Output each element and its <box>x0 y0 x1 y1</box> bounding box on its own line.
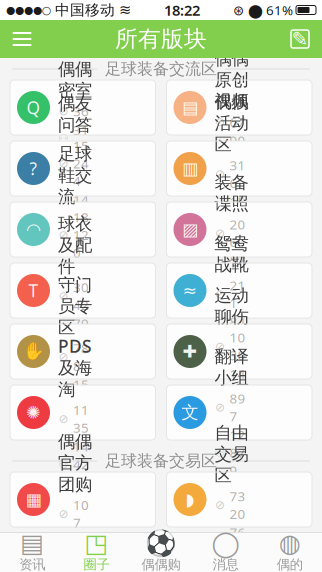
staticText: 翻译小组 <box>214 346 248 388</box>
button[interactable]: ✋ <box>10 324 155 379</box>
staticText: 18120 <box>73 208 89 261</box>
staticText: 5752 <box>229 252 245 287</box>
staticText: 偶偶密室 <box>58 59 92 101</box>
staticText: ⊘ <box>58 507 68 520</box>
staticText: ⊘ <box>58 104 68 118</box>
staticText: 文 <box>181 402 198 423</box>
staticText: 运动聊伤 <box>214 285 248 327</box>
staticText: 316 <box>229 156 245 192</box>
button[interactable]: ▥ <box>166 141 312 196</box>
staticText: ≋ <box>119 2 131 18</box>
staticText: ⚇ <box>58 210 69 224</box>
staticText: 偶偶购 <box>141 556 180 572</box>
button[interactable]: Q <box>10 80 155 135</box>
staticText: 15527 <box>229 193 245 246</box>
staticText: 足球装备交易区 <box>105 451 217 471</box>
staticText: ▤ <box>182 98 198 117</box>
staticText: ⚇ <box>214 263 225 276</box>
staticText: 偶的 <box>277 556 303 572</box>
staticText: 1030 <box>229 328 245 364</box>
staticText: ⚇ <box>58 334 69 348</box>
button[interactable]: ? <box>10 141 155 196</box>
staticText: 36 <box>73 102 89 120</box>
staticText: ⚇ <box>214 385 225 398</box>
staticText: ⚇ <box>58 395 69 409</box>
staticText: ⚇ <box>58 457 69 471</box>
staticText: ⊘ <box>58 350 68 364</box>
staticText: 1135 <box>73 401 89 436</box>
button[interactable]: 发帖 <box>278 20 322 58</box>
staticText: 偶偶官方团购 <box>58 431 92 495</box>
staticText: 211 <box>229 276 245 312</box>
button[interactable]: ◳ <box>64 532 129 572</box>
staticText: 12879 <box>229 426 245 479</box>
staticText: ⊛ ⬤ 61% <box>233 1 296 19</box>
button[interactable]: ✺ <box>10 385 155 440</box>
staticText: 球衣及配件 <box>58 213 92 277</box>
staticText: ✚ <box>182 342 197 361</box>
staticText: ✋ <box>22 342 44 361</box>
staticText: ⊘ <box>215 167 225 181</box>
staticText: PDS及海淘 <box>58 334 92 400</box>
staticText: Q <box>26 96 40 119</box>
staticText: ⚇ <box>214 324 225 337</box>
staticText: ⊘ <box>215 226 225 240</box>
staticText: 自由交易区 <box>214 422 248 486</box>
staticText: 偶偶活动区 <box>214 91 248 155</box>
staticText: 鸳鸯战靴 <box>214 233 248 275</box>
staticText: ⊘ <box>58 228 68 242</box>
staticText: ◳ <box>85 529 109 558</box>
staticText: ◠ <box>26 220 41 239</box>
staticText: 9301 <box>73 532 89 568</box>
button[interactable]: ◯ <box>193 532 258 572</box>
staticText: 897 <box>229 389 245 425</box>
staticText: ⊘ <box>58 412 68 425</box>
staticText: ⊘ <box>58 156 68 170</box>
button[interactable]: T <box>10 263 155 318</box>
button[interactable]: ◍ <box>258 532 322 572</box>
staticText: ▥ <box>182 159 198 178</box>
button[interactable]: 文 <box>166 385 312 440</box>
staticText: ⊘ <box>215 287 225 301</box>
staticText: 装备谍照 <box>214 172 248 214</box>
button[interactable]: ◠ <box>10 202 155 257</box>
staticText: 守门员专区 <box>58 274 92 338</box>
staticText: 206 <box>229 215 245 251</box>
staticText: 107 <box>73 496 89 531</box>
staticText: ▤ <box>20 529 44 558</box>
button[interactable]: ⚽ <box>129 532 193 572</box>
button[interactable]: 菜单 <box>0 20 44 58</box>
staticText: 7320 <box>229 487 245 523</box>
staticText: 76245 <box>229 524 245 572</box>
staticText: ◯ <box>211 529 239 558</box>
staticText: ≈ <box>182 281 197 300</box>
staticText: 909 <box>229 132 245 167</box>
button[interactable]: ≈ <box>166 263 312 318</box>
staticText: ⚇ <box>58 132 69 145</box>
staticText: 消息 <box>212 556 238 572</box>
staticText: ✺ <box>26 403 41 422</box>
button[interactable]: ▨ <box>166 202 312 257</box>
staticText: ⚇ <box>58 282 69 296</box>
staticText: ⚇ <box>214 543 225 557</box>
staticText: 79189 <box>73 315 89 368</box>
staticText: ? <box>29 157 37 180</box>
button[interactable]: ▦ <box>10 472 155 527</box>
staticText: ●●●●○ <box>6 4 51 16</box>
button[interactable]: ✚ <box>166 324 312 379</box>
button[interactable]: ▤ <box>166 80 312 135</box>
staticText: 圈子 <box>84 556 110 572</box>
button[interactable]: ▤ <box>0 532 64 572</box>
button[interactable]: ◗ <box>166 472 312 527</box>
staticText: ✎ <box>291 28 308 50</box>
staticText: ◗ <box>185 490 194 509</box>
staticText: 足球鞋交流 <box>58 143 92 207</box>
staticText: 141221 <box>73 191 89 244</box>
staticText: 67 <box>229 113 245 131</box>
staticText: 614183 <box>73 262 89 315</box>
staticText: 848 <box>229 313 245 348</box>
staticText: 15244 <box>73 137 89 190</box>
staticText: ⊘ <box>215 115 225 128</box>
staticText: ▦ <box>25 490 41 509</box>
